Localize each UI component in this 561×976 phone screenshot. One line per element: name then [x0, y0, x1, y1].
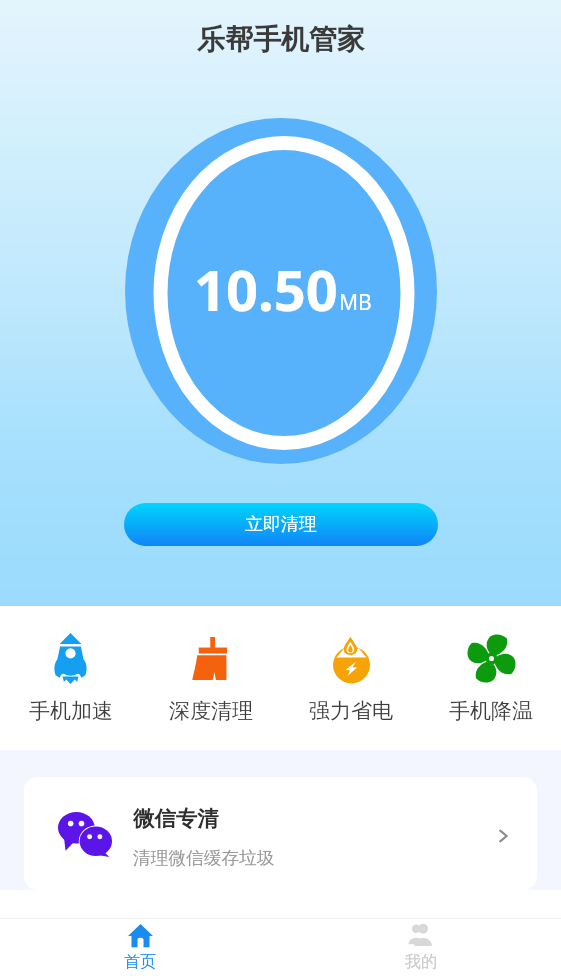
button[interactable]: 手机降温: [421, 633, 561, 724]
button[interactable]: 强力省电: [281, 633, 421, 724]
staticText: 10.50: [194, 251, 338, 327]
staticText: MB: [339, 288, 372, 317]
button[interactable]: Home: [0, 918, 280, 976]
staticText: 首页: [124, 952, 156, 972]
button[interactable]: 深度清理: [141, 633, 281, 724]
staticText: 乐帮手机管家: [197, 22, 365, 57]
staticText: 立即清理: [245, 513, 317, 536]
staticText: 手机降温: [449, 698, 533, 724]
staticText: 手机加速: [29, 698, 113, 724]
staticText: 我的: [405, 952, 437, 972]
staticText: 微信专清: [133, 805, 219, 832]
staticText: 深度清理: [169, 698, 253, 724]
button[interactable]: 微信专清: [24, 777, 537, 890]
button[interactable]: 立即清理: [124, 503, 438, 546]
staticText: 强力省电: [309, 698, 393, 724]
other: Profile: [408, 922, 434, 948]
other: Home: [128, 923, 153, 948]
button[interactable]: Profile: [280, 918, 561, 976]
staticText: 清理微信缓存垃圾: [133, 847, 275, 869]
button[interactable]: 手机加速: [0, 633, 141, 724]
